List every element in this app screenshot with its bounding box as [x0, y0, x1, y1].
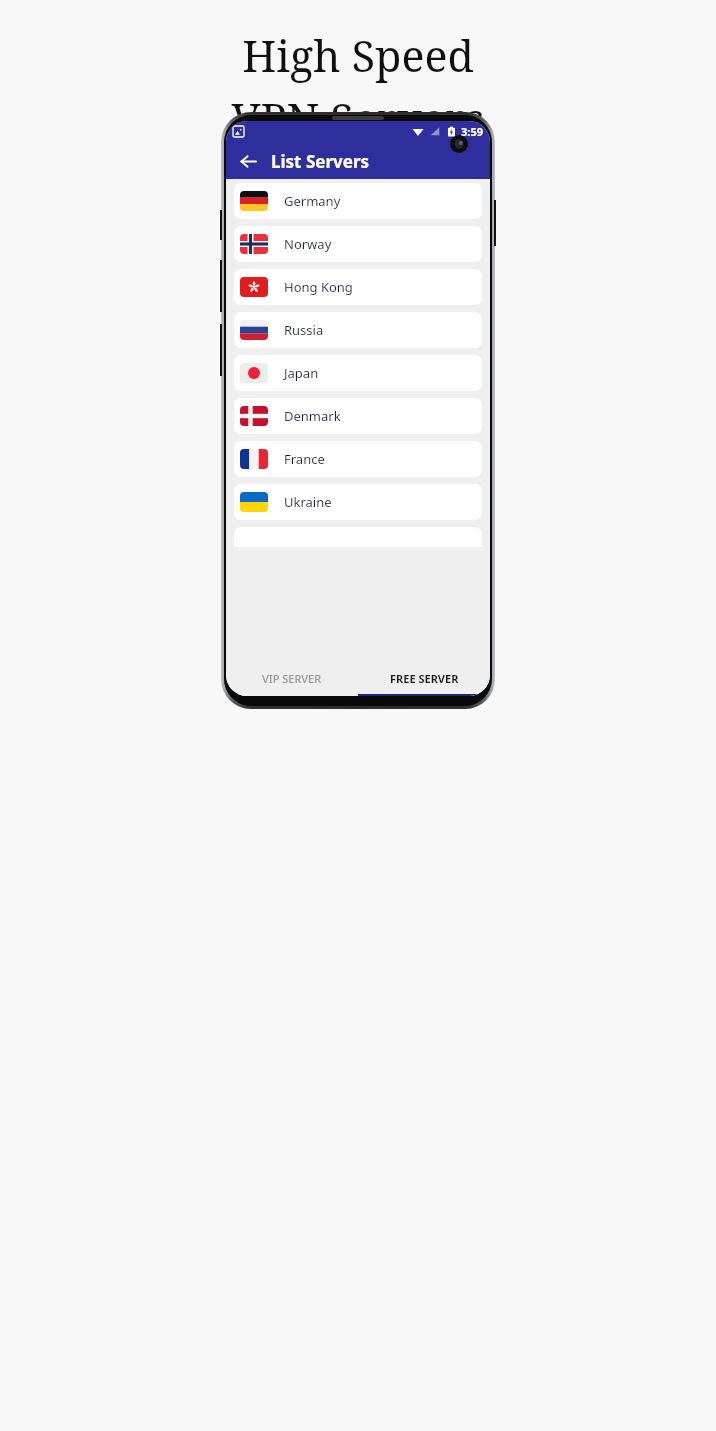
button[interactable]: VIP SERVER [226, 660, 358, 696]
staticText: 3:59 [461, 124, 483, 139]
button[interactable]: Japan [234, 355, 482, 391]
staticText: Japan [284, 364, 319, 382]
staticText: Ukraine [284, 493, 332, 511]
button[interactable]: Back [233, 146, 263, 176]
button[interactable]: FREE SERVER [358, 660, 490, 696]
staticText: Russia [284, 321, 324, 339]
button[interactable]: Hong Kong [234, 269, 482, 305]
staticText: France [284, 450, 325, 468]
staticText: Germany [284, 192, 341, 210]
staticText: High Speed [242, 26, 474, 85]
staticText: FREE SERVER [390, 671, 459, 686]
button[interactable]: Germany [234, 183, 482, 219]
staticText: Denmark [284, 407, 341, 425]
button[interactable]: Denmark [234, 398, 482, 434]
button[interactable]: Russia [234, 312, 482, 348]
button[interactable]: France [234, 441, 482, 477]
button[interactable]: Norway [234, 226, 482, 262]
staticText: List Servers [271, 150, 370, 173]
button[interactable]: Ukraine [234, 484, 482, 520]
staticText: Norway [284, 235, 332, 253]
staticText: Hong Kong [284, 278, 353, 296]
staticText: VPN Servers [231, 89, 485, 148]
staticText: VIP SERVER [262, 671, 322, 686]
